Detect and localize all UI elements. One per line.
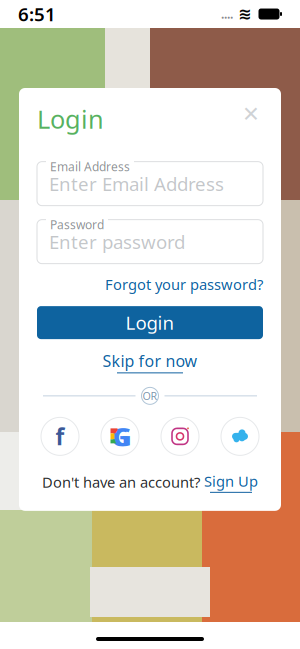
button[interactable]: Sign in with Instagram	[161, 417, 199, 455]
staticText: G	[111, 419, 129, 453]
staticText: Password	[50, 217, 104, 232]
button[interactable]: Sign in with Facebook	[41, 417, 79, 455]
staticText: ....	[221, 6, 233, 22]
staticText: Don't have an account?	[42, 472, 200, 492]
staticText: Login	[37, 102, 104, 136]
staticText: Enter password	[49, 229, 185, 254]
staticText: Sign Up	[204, 471, 258, 491]
staticText: f	[55, 421, 64, 451]
button[interactable]: Sign in with Twitter	[221, 417, 259, 455]
button[interactable]: Skip for now	[102, 350, 197, 373]
staticText: ≋	[238, 5, 251, 23]
button[interactable]: Forgot your password?	[105, 275, 263, 294]
staticText: OR	[142, 389, 157, 403]
staticText: Email Address	[50, 159, 130, 174]
button[interactable]: Sign in with Google	[101, 417, 139, 455]
staticText: 6:51	[18, 2, 56, 26]
staticText: ✕	[242, 102, 260, 126]
button[interactable]: Login	[37, 306, 263, 339]
staticText: Enter Email Address	[49, 171, 224, 196]
button[interactable]: Close	[239, 102, 263, 126]
button[interactable]: Sign Up	[204, 471, 258, 493]
staticText: Forgot your password?	[105, 275, 263, 294]
staticText: Login	[125, 310, 174, 335]
staticText: G	[113, 419, 131, 453]
staticText: Skip for now	[102, 350, 197, 371]
